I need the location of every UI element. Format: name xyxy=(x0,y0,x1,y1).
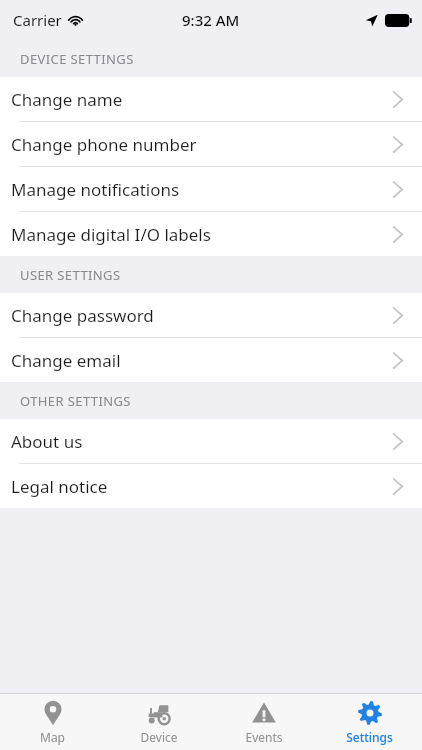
button[interactable]: Change password xyxy=(0,293,422,337)
staticText: USER SETTINGS xyxy=(20,266,121,284)
staticText: Settings xyxy=(346,729,393,745)
button[interactable]: Change phone number xyxy=(0,122,422,166)
button[interactable]: Events xyxy=(211,694,316,750)
staticText: Manage digital I/O labels xyxy=(11,223,393,246)
button[interactable]: Manage digital I/O labels xyxy=(0,212,422,256)
button[interactable]: Device xyxy=(106,694,211,750)
staticText: Events xyxy=(245,729,283,745)
button[interactable]: About us xyxy=(0,419,422,463)
staticText: Change name xyxy=(11,88,393,111)
staticText: DEVICE SETTINGS xyxy=(20,50,134,68)
button[interactable]: Change name xyxy=(0,77,422,121)
staticText: About us xyxy=(11,430,393,453)
staticText: Legal notice xyxy=(11,475,393,498)
staticText: Change email xyxy=(11,349,393,372)
staticText: 9:32 AM xyxy=(182,10,240,30)
staticText: Change phone number xyxy=(11,133,393,156)
button[interactable]: Settings xyxy=(317,694,422,750)
staticText: Manage notifications xyxy=(11,178,393,201)
staticText: Change password xyxy=(11,304,393,327)
button[interactable]: Legal notice xyxy=(0,464,422,508)
staticText: Map xyxy=(40,729,65,745)
staticText: Device xyxy=(140,729,178,745)
staticText: OTHER SETTINGS xyxy=(20,392,131,410)
button[interactable]: Change email xyxy=(0,338,422,382)
button[interactable]: Map xyxy=(0,694,105,750)
button[interactable]: Manage notifications xyxy=(0,167,422,211)
staticText: Carrier xyxy=(13,10,62,30)
